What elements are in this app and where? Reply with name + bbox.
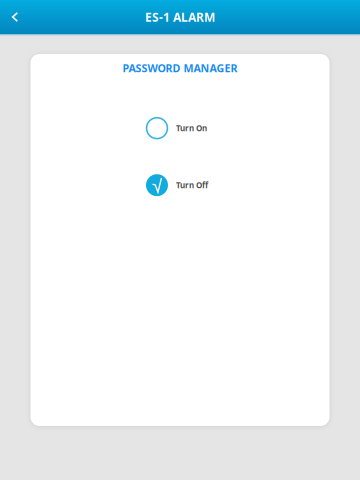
staticText: Turn Off <box>176 180 208 190</box>
staticText: PASSWORD MANAGER <box>122 61 237 75</box>
staticText: Turn On <box>176 123 207 133</box>
button[interactable]: Turn Off <box>144 173 216 197</box>
staticText: ES-1 ALARM <box>145 9 215 25</box>
button[interactable]: Back <box>0 0 30 34</box>
button[interactable]: Turn On <box>144 116 216 140</box>
